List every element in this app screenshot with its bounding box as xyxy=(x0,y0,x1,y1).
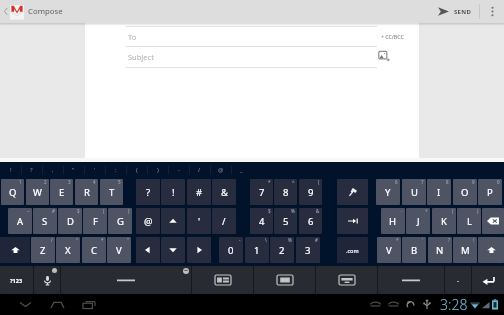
button[interactable]: + CC/BCC xyxy=(377,30,407,42)
button[interactable]: 1 xyxy=(245,237,269,263)
staticText: ? xyxy=(448,237,450,243)
button[interactable]: / xyxy=(212,208,236,234)
button[interactable]: 9 xyxy=(299,179,322,205)
button[interactable]: H xyxy=(381,208,405,234)
button[interactable]: L xyxy=(457,208,481,234)
staticText: / xyxy=(51,237,53,243)
button[interactable]: _ xyxy=(231,162,252,178)
button[interactable]: 5 xyxy=(274,208,297,234)
staticText: A xyxy=(17,215,24,228)
button[interactable]: # xyxy=(187,179,211,205)
button[interactable]: Switch keyboard xyxy=(192,266,253,294)
button[interactable]: ) xyxy=(147,162,168,178)
button[interactable]: Z xyxy=(31,237,55,263)
button[interactable]: @ xyxy=(210,162,231,178)
button[interactable]: Left xyxy=(136,237,160,263)
button[interactable]: Tab xyxy=(337,208,368,234)
button[interactable]: ' xyxy=(187,208,211,234)
button[interactable]: Backspace xyxy=(482,208,504,234)
button[interactable]: ( xyxy=(126,162,147,178)
button[interactable]: .com xyxy=(337,237,368,263)
button[interactable]: Space xyxy=(378,266,444,294)
button[interactable]: : xyxy=(105,162,126,178)
button[interactable]: Q xyxy=(1,179,24,205)
button[interactable]: Down xyxy=(161,237,185,263)
button[interactable]: M xyxy=(453,237,477,263)
button[interactable]: B xyxy=(402,237,426,263)
button[interactable]: Switch keyboard xyxy=(316,266,377,294)
button[interactable]: 2 xyxy=(270,237,294,263)
button[interactable]: ? xyxy=(21,162,42,178)
button[interactable]: - xyxy=(168,162,189,178)
staticText: ! xyxy=(473,237,475,243)
button[interactable]: Subject xyxy=(126,47,377,67)
button[interactable]: Switch keyboard xyxy=(254,266,315,294)
button[interactable]: & xyxy=(212,179,236,205)
button[interactable]: T xyxy=(100,179,123,205)
button[interactable]: @ xyxy=(136,208,160,234)
button[interactable]: ' xyxy=(84,162,105,178)
button[interactable]: Attach image xyxy=(378,50,394,66)
button[interactable]: Home xyxy=(44,294,70,315)
button[interactable]: 8 xyxy=(274,179,297,205)
button[interactable]: P xyxy=(478,179,502,205)
button[interactable]: Voice input xyxy=(34,266,60,294)
button[interactable]: Right xyxy=(187,237,211,263)
button[interactable]: Y xyxy=(376,179,400,205)
button[interactable]: V xyxy=(107,237,131,263)
button[interactable]: ?123 xyxy=(0,266,33,294)
button[interactable]: D xyxy=(58,208,82,234)
button[interactable]: ? xyxy=(136,179,160,205)
button[interactable]: 6 xyxy=(299,208,322,234)
button[interactable]: 7 xyxy=(250,179,273,205)
staticText: X xyxy=(65,244,71,257)
button[interactable]: Enter xyxy=(472,266,504,294)
button[interactable]: Up xyxy=(161,208,185,234)
button[interactable]: N xyxy=(428,237,452,263)
button[interactable]: To xyxy=(126,27,377,47)
button[interactable]: S xyxy=(33,208,57,234)
button[interactable]: E xyxy=(50,179,73,205)
staticText: $ xyxy=(268,208,271,214)
button[interactable]: G xyxy=(108,208,132,234)
staticText: R xyxy=(84,186,90,199)
button[interactable]: U xyxy=(402,179,426,205)
button[interactable]: Shift xyxy=(0,237,30,263)
button[interactable]: Recents xyxy=(76,294,102,315)
button[interactable]: . xyxy=(445,266,471,294)
button[interactable]: 0 xyxy=(219,237,243,263)
staticText: : xyxy=(115,166,117,174)
button[interactable]: ! xyxy=(0,162,21,178)
button[interactable]: F xyxy=(83,208,107,234)
button[interactable]: More options xyxy=(480,0,504,23)
button[interactable]: X xyxy=(56,237,80,263)
button[interactable]: Back xyxy=(12,294,38,315)
button[interactable]: Shift xyxy=(478,237,504,263)
staticText: " xyxy=(72,166,75,174)
button[interactable]: K xyxy=(432,208,456,234)
staticText: ! xyxy=(10,166,12,174)
button[interactable]: , xyxy=(42,162,63,178)
button[interactable]: A xyxy=(8,208,32,234)
button[interactable]: R xyxy=(75,179,98,205)
button[interactable]: V xyxy=(377,237,401,263)
button[interactable]: ! xyxy=(161,179,185,205)
button[interactable]: / xyxy=(189,162,210,178)
button[interactable]: Compose xyxy=(0,0,110,23)
button[interactable]: SEND xyxy=(430,0,479,23)
staticText: * xyxy=(396,237,399,243)
button[interactable]: 4 xyxy=(250,208,273,234)
button[interactable]: Space xyxy=(61,266,191,294)
button[interactable]: C xyxy=(82,237,106,263)
button[interactable]: I xyxy=(427,179,451,205)
button[interactable]: " xyxy=(63,162,84,178)
button[interactable]: J xyxy=(406,208,430,234)
button[interactable]: O xyxy=(453,179,477,205)
button[interactable]: 3 xyxy=(296,237,320,263)
button[interactable]: W xyxy=(26,179,49,205)
staticText: \ xyxy=(265,237,267,243)
staticText: " xyxy=(127,237,129,243)
staticText: K xyxy=(441,215,447,228)
button[interactable]: Sticker xyxy=(337,179,368,205)
staticText: D xyxy=(67,215,74,228)
